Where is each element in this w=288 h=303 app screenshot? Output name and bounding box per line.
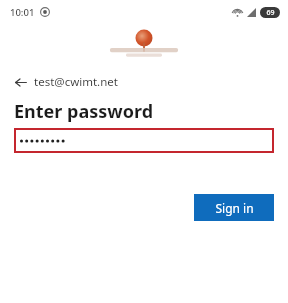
button[interactable]: Sign in [194,194,274,221]
other: Back [14,76,27,89]
staticText: 10:01 [10,6,35,19]
button[interactable]: Password [14,128,274,153]
button[interactable]: Back [14,72,124,92]
staticText: 69 [266,8,275,18]
staticText: Enter password [14,99,154,124]
staticText: test@cwimt.net [34,74,118,90]
staticText: Sign in [215,200,254,216]
